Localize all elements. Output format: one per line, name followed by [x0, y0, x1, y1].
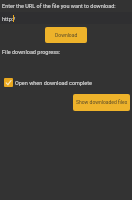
- staticText: http:/: [2, 16, 16, 22]
- staticText: Enter the URL of the file you want to do…: [2, 3, 116, 9]
- staticText: Download: [55, 32, 78, 38]
- button[interactable]: Open when download complete: [4, 78, 92, 87]
- staticText: Show downloaded files: [76, 99, 128, 105]
- button[interactable]: Show downloaded files: [73, 94, 130, 111]
- staticText: Open when download complete: [15, 80, 92, 86]
- button[interactable]: URL input field: [0, 12, 132, 24]
- staticText: File download progress:: [2, 49, 61, 55]
- button[interactable]: Download: [45, 27, 87, 43]
